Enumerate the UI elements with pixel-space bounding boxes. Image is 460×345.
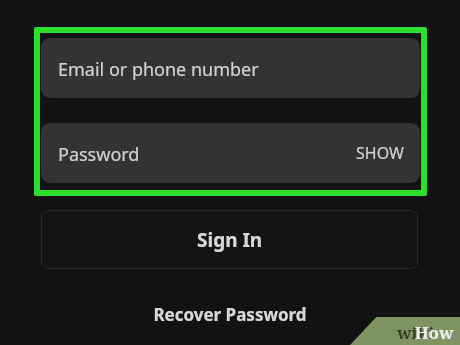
button[interactable]: Email or phone number [41,38,420,98]
staticText: How [397,321,454,344]
staticText: Password [58,142,140,167]
button[interactable]: Recover Password [41,295,418,333]
staticText: Email or phone number [58,57,259,82]
button[interactable]: Sign In [41,210,418,269]
staticText: wiki [397,321,435,344]
staticText: SHOW [356,142,404,164]
staticText: Sign In [197,227,263,253]
staticText: Recover Password [153,303,307,326]
button[interactable]: SHOW [340,134,420,172]
button[interactable]: Password [41,123,420,183]
